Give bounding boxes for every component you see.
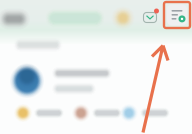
button[interactable]: Rewards	[111, 6, 134, 29]
button[interactable]: Messages	[142, 7, 160, 24]
button[interactable]: Quick action	[117, 103, 173, 123]
button[interactable]: Search	[45, 8, 105, 27]
button[interactable]: Statements	[164, 2, 190, 28]
button[interactable]: Quick action	[69, 103, 125, 123]
button[interactable]: Home	[0, 8, 30, 29]
button[interactable]: Quick action	[11, 103, 67, 123]
button[interactable]: Account	[10, 63, 132, 99]
